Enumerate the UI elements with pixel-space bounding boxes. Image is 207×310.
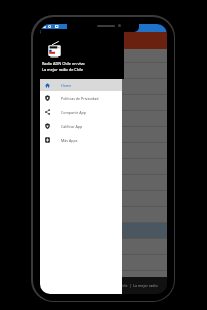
button[interactable] bbox=[40, 127, 167, 142]
button[interactable] bbox=[40, 111, 167, 126]
button[interactable]: Políticas de Privacidad bbox=[40, 91, 122, 105]
button[interactable] bbox=[40, 95, 167, 110]
button[interactable] bbox=[40, 63, 167, 78]
button[interactable]: Compartir App bbox=[40, 105, 122, 119]
button[interactable]: Home bbox=[40, 79, 122, 91]
button[interactable] bbox=[40, 255, 167, 270]
staticText: Más Apps bbox=[61, 138, 78, 143]
staticText: Compartir App bbox=[61, 110, 86, 115]
button[interactable] bbox=[40, 143, 167, 158]
button[interactable] bbox=[40, 191, 167, 206]
staticText: Radio ADN Chile en vivo bbox=[42, 61, 85, 66]
button[interactable] bbox=[40, 79, 167, 94]
staticText: Calificar App bbox=[61, 124, 83, 129]
staticText: Radio ADN Chile | La mejor radio bbox=[100, 283, 158, 288]
button[interactable] bbox=[40, 159, 167, 174]
staticText: Home bbox=[61, 83, 72, 88]
button[interactable] bbox=[40, 223, 167, 238]
staticText: Políticas de Privacidad bbox=[61, 96, 99, 101]
button[interactable] bbox=[40, 239, 167, 254]
button[interactable]: Calificar App bbox=[40, 119, 122, 133]
button[interactable]: Más Apps bbox=[40, 133, 122, 147]
button[interactable] bbox=[40, 175, 167, 190]
staticText: La mejor radio de Chile bbox=[42, 67, 84, 72]
button[interactable] bbox=[40, 207, 167, 222]
button[interactable] bbox=[40, 49, 167, 62]
